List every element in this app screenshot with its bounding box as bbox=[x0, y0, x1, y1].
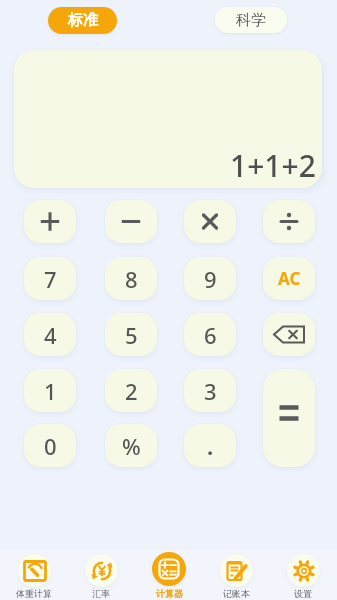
button[interactable] bbox=[263, 313, 315, 356]
button[interactable] bbox=[184, 200, 236, 243]
staticText: . bbox=[207, 431, 214, 461]
staticText: 9 bbox=[204, 264, 217, 294]
button[interactable]: 标准 bbox=[48, 7, 117, 34]
button[interactable]: 记账本 bbox=[214, 550, 258, 600]
staticText: 0 bbox=[44, 431, 57, 461]
button[interactable]: 0 bbox=[24, 424, 76, 467]
button[interactable]: AC bbox=[263, 257, 315, 300]
button[interactable]: 3 bbox=[184, 369, 236, 412]
staticText: 6 bbox=[204, 320, 217, 350]
staticText: 2 bbox=[125, 376, 138, 406]
button[interactable]: 计算器 bbox=[147, 550, 191, 600]
button[interactable] bbox=[105, 200, 157, 243]
staticText: 8 bbox=[125, 264, 138, 294]
button[interactable]: 科学 bbox=[215, 7, 287, 33]
staticText: 1 bbox=[44, 376, 57, 406]
staticText: 计算器 bbox=[156, 588, 183, 599]
button[interactable]: 1 bbox=[24, 369, 76, 412]
button[interactable] bbox=[263, 200, 315, 243]
button[interactable]: 体重计算 bbox=[12, 550, 56, 600]
staticText: AC bbox=[278, 267, 301, 290]
button[interactable]: 设置 bbox=[281, 550, 325, 600]
staticText: 汇率 bbox=[92, 588, 110, 599]
staticText: 4 bbox=[44, 320, 57, 350]
staticText: 7 bbox=[44, 264, 57, 294]
staticText: 记账本 bbox=[223, 588, 250, 599]
button[interactable]: 4 bbox=[24, 313, 76, 356]
button[interactable]: . bbox=[184, 424, 236, 467]
staticText: 设置 bbox=[294, 588, 312, 599]
button[interactable]: 2 bbox=[105, 369, 157, 412]
button[interactable]: 汇率 bbox=[79, 550, 123, 600]
staticText: 1+1+2 bbox=[230, 145, 316, 186]
button[interactable]: % bbox=[105, 424, 157, 467]
button[interactable]: 7 bbox=[24, 257, 76, 300]
button[interactable]: 8 bbox=[105, 257, 157, 300]
button[interactable] bbox=[24, 200, 76, 243]
staticText: 5 bbox=[125, 320, 138, 350]
button[interactable]: 9 bbox=[184, 257, 236, 300]
button[interactable]: 5 bbox=[105, 313, 157, 356]
staticText: 3 bbox=[204, 376, 217, 406]
staticText: 标准 bbox=[68, 11, 98, 30]
staticText: % bbox=[122, 431, 141, 461]
button[interactable]: 6 bbox=[184, 313, 236, 356]
staticText: 科学 bbox=[236, 11, 266, 30]
button[interactable] bbox=[263, 369, 315, 467]
staticText: 体重计算 bbox=[16, 588, 52, 599]
